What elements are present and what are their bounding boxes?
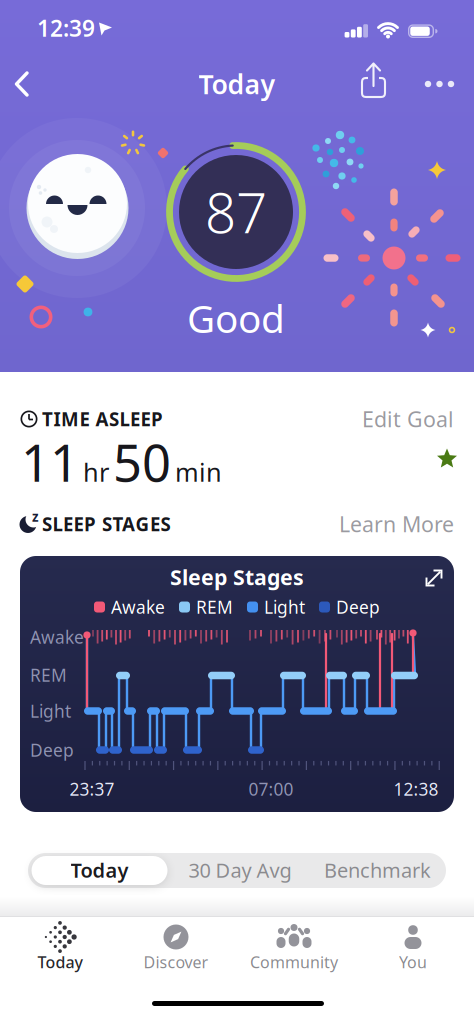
staticText: hr bbox=[83, 455, 109, 489]
staticText: 07:00 bbox=[248, 777, 293, 800]
staticText: Good bbox=[187, 292, 285, 344]
staticText: min bbox=[175, 455, 222, 489]
staticText: Light bbox=[30, 699, 71, 722]
staticText: SLEEP STAGES bbox=[42, 512, 170, 536]
staticText: 87 bbox=[205, 176, 267, 248]
staticText: Today bbox=[70, 857, 128, 883]
staticText: Light bbox=[264, 595, 305, 618]
staticText: Community bbox=[250, 951, 338, 973]
staticText: Deep bbox=[336, 595, 380, 618]
staticText: Discover bbox=[143, 951, 208, 973]
staticText: 12:39 bbox=[37, 13, 95, 43]
staticText: z bbox=[32, 508, 39, 525]
staticText: Benchmark bbox=[324, 857, 431, 883]
staticText: 50 bbox=[113, 428, 171, 496]
staticText: Awake bbox=[111, 595, 165, 618]
staticText: REM bbox=[30, 663, 67, 686]
staticText: REM bbox=[196, 595, 233, 618]
staticText: Deep bbox=[30, 738, 74, 761]
staticText: Learn More bbox=[339, 510, 454, 538]
staticText: 23:37 bbox=[69, 777, 114, 800]
staticText: 30 Day Avg bbox=[188, 857, 291, 883]
staticText: Edit Goal bbox=[362, 405, 454, 433]
staticText: Sleep Stages bbox=[170, 563, 304, 591]
staticText: Today bbox=[198, 66, 275, 102]
staticText: TIME ASLEEP bbox=[42, 407, 163, 431]
staticText: 12:38 bbox=[393, 777, 438, 800]
staticText: Today bbox=[37, 951, 82, 973]
staticText: 11 bbox=[21, 428, 79, 496]
staticText: You bbox=[399, 951, 427, 973]
staticText: Awake bbox=[30, 625, 84, 648]
